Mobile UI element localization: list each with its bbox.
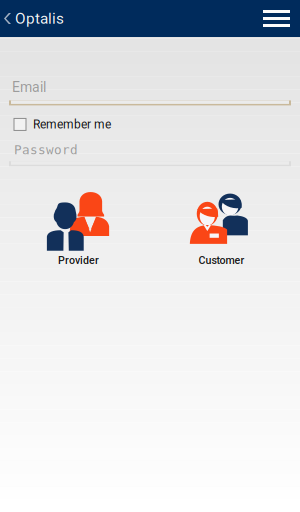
staticText: Optalis — [15, 9, 64, 27]
button[interactable]: Optalis — [0, 1, 64, 35]
button[interactable]: Menu — [251, 4, 300, 33]
button[interactable]: Provider — [7, 190, 150, 267]
button[interactable]: Customer — [150, 190, 293, 267]
staticText: Provider — [58, 254, 99, 267]
button[interactable]: Remember me — [0, 116, 111, 132]
staticText: Password — [14, 142, 78, 157]
staticText: Remember me — [33, 117, 111, 131]
staticText: Customer — [198, 254, 244, 267]
staticText: Email — [12, 79, 46, 95]
